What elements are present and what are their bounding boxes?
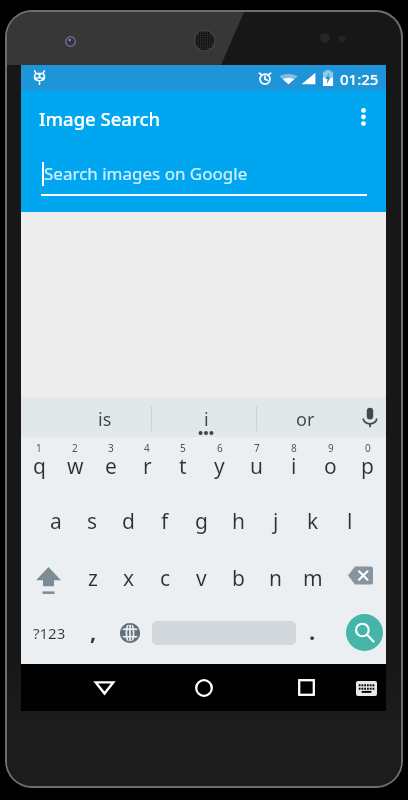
staticText: 4: [144, 441, 150, 455]
button[interactable]: 9: [312, 437, 349, 493]
button[interactable]: b: [220, 550, 257, 607]
button[interactable]: 2: [57, 437, 93, 493]
button[interactable]: ,: [75, 607, 111, 664]
button[interactable]: Change keyboard language: [112, 607, 148, 664]
staticText: o: [324, 452, 337, 481]
button[interactable]: a: [38, 493, 74, 550]
staticText: w: [67, 452, 84, 481]
staticText: i: [204, 407, 209, 432]
button[interactable]: .: [294, 607, 330, 664]
button[interactable]: is: [55, 397, 155, 437]
staticText: p: [361, 452, 374, 481]
staticText: x: [123, 564, 135, 593]
staticText: 5: [180, 441, 186, 455]
button[interactable]: Recent apps: [264, 664, 346, 711]
button[interactable]: Home: [162, 664, 244, 711]
staticText: j: [273, 507, 279, 536]
staticText: l: [347, 507, 353, 536]
staticText: b: [232, 564, 245, 593]
staticText: 2: [72, 441, 78, 455]
staticText: g: [195, 507, 208, 536]
button[interactable]: h: [220, 493, 257, 550]
staticText: c: [160, 564, 171, 593]
button[interactable]: Shift: [21, 550, 75, 607]
staticText: q: [33, 452, 46, 481]
button[interactable]: s: [74, 493, 110, 550]
staticText: 6: [217, 441, 223, 455]
staticText: r: [143, 452, 152, 481]
button[interactable]: ?123: [25, 607, 73, 664]
button[interactable]: Search: [332, 607, 386, 664]
button[interactable]: z: [75, 550, 111, 607]
staticText: ,: [90, 616, 97, 646]
staticText: a: [50, 507, 62, 536]
button[interactable]: k: [294, 493, 331, 550]
staticText: k: [307, 507, 319, 536]
button[interactable]: 1: [21, 437, 57, 493]
button[interactable]: 4: [129, 437, 165, 493]
staticText: 7: [254, 441, 260, 455]
staticText: or: [296, 407, 315, 432]
button[interactable]: 7: [238, 437, 275, 493]
staticText: u: [250, 452, 263, 481]
staticText: 0: [365, 441, 371, 455]
staticText: n: [269, 564, 282, 593]
staticText: z: [88, 564, 98, 593]
button[interactable]: i: [155, 397, 257, 437]
staticText: 3: [108, 441, 114, 455]
staticText: Image Search: [39, 106, 161, 131]
staticText: t: [179, 452, 187, 481]
staticText: h: [232, 507, 245, 536]
staticText: 01:25: [340, 69, 379, 89]
staticText: ?123: [33, 623, 66, 643]
staticText: s: [87, 507, 98, 536]
button[interactable]: Voice input: [353, 397, 386, 437]
button[interactable]: l: [331, 493, 368, 550]
button[interactable]: v: [183, 550, 220, 607]
button[interactable]: c: [147, 550, 183, 607]
button[interactable]: d: [110, 493, 146, 550]
staticText: e: [105, 452, 117, 481]
staticText: f: [161, 507, 169, 536]
staticText: 9: [328, 441, 334, 455]
staticText: i: [291, 452, 297, 481]
button[interactable]: 6: [201, 437, 238, 493]
staticText: Search images on Google: [44, 162, 248, 185]
staticText: 1: [36, 441, 42, 455]
button[interactable]: Search images on Google: [41, 157, 367, 197]
staticText: is: [98, 407, 112, 432]
button[interactable]: 3: [93, 437, 129, 493]
button[interactable]: m: [294, 550, 331, 607]
button[interactable]: Space: [148, 607, 300, 664]
button[interactable]: Switch keyboard: [346, 664, 386, 711]
button[interactable]: 0: [349, 437, 386, 493]
button[interactable]: More options: [343, 93, 383, 141]
button[interactable]: n: [257, 550, 294, 607]
staticText: m: [303, 564, 323, 593]
button[interactable]: x: [111, 550, 147, 607]
staticText: 8: [291, 441, 297, 455]
button[interactable]: 8: [275, 437, 312, 493]
button[interactable]: j: [257, 493, 294, 550]
button[interactable]: g: [183, 493, 220, 550]
staticText: y: [214, 452, 225, 481]
staticText: v: [196, 564, 207, 593]
staticText: d: [122, 507, 135, 536]
staticText: .: [309, 616, 316, 646]
button[interactable]: 5: [165, 437, 201, 493]
button[interactable]: f: [146, 493, 183, 550]
button[interactable]: Backspace: [331, 550, 386, 607]
button[interactable]: Back: [62, 664, 144, 711]
button[interactable]: or: [257, 397, 353, 437]
